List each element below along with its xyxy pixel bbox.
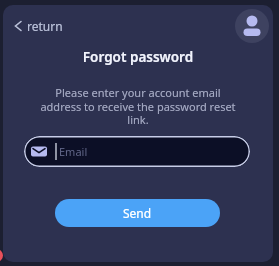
staticText: Forgot password xyxy=(3,48,273,66)
button[interactable]: Send xyxy=(55,199,220,227)
button[interactable]: return xyxy=(14,18,63,34)
button[interactable] xyxy=(235,9,269,43)
staticText: Email xyxy=(59,144,88,159)
staticText: return xyxy=(27,18,63,34)
button[interactable]: Email xyxy=(24,136,250,167)
staticText: Send xyxy=(123,205,152,221)
staticText: Please enter your account email address … xyxy=(3,85,273,127)
